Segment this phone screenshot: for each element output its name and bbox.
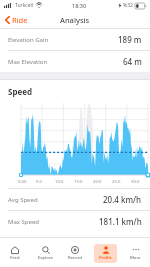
button[interactable]: Profile xyxy=(90,239,120,267)
staticText: 181.1 km/h xyxy=(99,216,142,227)
button[interactable]: Record xyxy=(60,239,90,267)
staticText: 15:0 xyxy=(74,179,83,185)
staticText: 18:30 xyxy=(72,2,87,9)
staticText: 5:0 xyxy=(36,179,42,185)
staticText: Feed xyxy=(10,255,20,261)
staticText: Turkcell xyxy=(15,2,34,9)
staticText: Record xyxy=(68,255,82,261)
button[interactable]: Ride xyxy=(3,13,30,27)
staticText: Speed xyxy=(8,86,33,97)
button[interactable]: Max Speed xyxy=(0,211,150,232)
staticText: Avg Speed xyxy=(8,196,38,204)
button[interactable]: Avg Speed xyxy=(0,189,150,210)
button[interactable]: Max Elevation xyxy=(0,51,150,72)
staticText: More xyxy=(130,255,141,261)
staticText: 25:0 xyxy=(112,179,121,185)
staticText: 30:0 xyxy=(131,179,140,185)
button[interactable]: Explore xyxy=(30,239,60,267)
staticText: Max Elevation xyxy=(8,58,48,66)
staticText: Ride xyxy=(12,15,28,25)
staticText: %32 xyxy=(123,2,133,9)
staticText: Explore xyxy=(38,255,53,261)
staticText: 20.4 km/h xyxy=(103,194,142,205)
staticText: Max Speed xyxy=(8,218,39,226)
button[interactable]: Feed xyxy=(0,239,30,267)
staticText: Profile xyxy=(99,255,112,261)
staticText: 10:0 xyxy=(55,179,64,185)
staticText: Analysis xyxy=(60,15,90,25)
staticText: 0:00 xyxy=(18,179,27,185)
staticText: Elevation Gain xyxy=(8,36,49,44)
button[interactable]: Elevation Gain xyxy=(0,29,150,50)
staticText: 20:0 xyxy=(93,179,102,185)
staticText: 64 m xyxy=(123,56,142,67)
button[interactable]: More xyxy=(120,239,150,267)
staticText: 189 m xyxy=(118,34,142,45)
